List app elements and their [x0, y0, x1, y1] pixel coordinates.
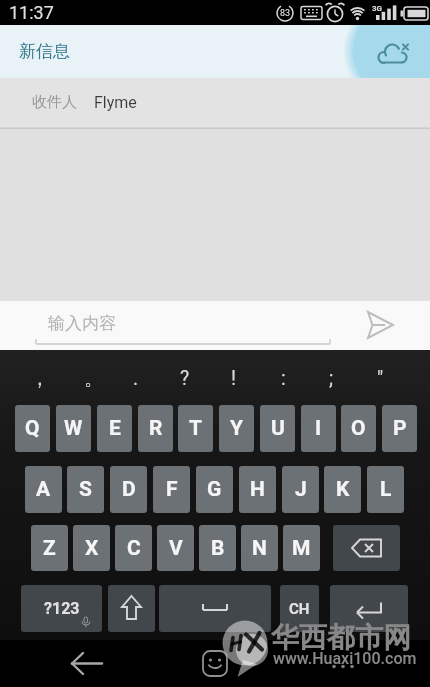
staticText: B [211, 536, 225, 561]
staticText: ? [180, 367, 190, 390]
button[interactable]: ! [212, 362, 256, 394]
staticText: ， [30, 366, 50, 391]
button[interactable]: R [138, 405, 173, 452]
button[interactable]: ? [163, 362, 207, 394]
staticText: X [85, 536, 99, 561]
button[interactable]: . [114, 362, 158, 394]
staticText: G [207, 477, 222, 502]
button[interactable]: I [301, 405, 336, 452]
button[interactable]: CH [280, 585, 319, 632]
button[interactable] [199, 648, 231, 680]
button[interactable]: 收件人 [0, 78, 430, 129]
button[interactable]: G [196, 466, 233, 513]
button[interactable]: H [239, 466, 276, 513]
button[interactable]: B [199, 525, 236, 571]
staticText: 3G [372, 4, 383, 13]
button[interactable] [360, 25, 430, 78]
staticText: K [336, 477, 350, 502]
button[interactable]: Z [31, 525, 68, 571]
staticText: L [380, 477, 392, 502]
staticText: . [133, 367, 139, 390]
button[interactable]: D [110, 466, 147, 513]
button[interactable]: ?123 [21, 585, 102, 632]
staticText: H [250, 477, 265, 502]
button[interactable]: P [382, 405, 417, 452]
button[interactable]: F [153, 466, 190, 513]
button[interactable]: ; [309, 362, 353, 394]
staticText: 输入内容 [48, 313, 116, 334]
button[interactable]: S [67, 466, 104, 513]
button[interactable] [159, 585, 271, 632]
staticText: P [393, 416, 407, 441]
staticText: Y [230, 416, 243, 441]
button[interactable]: U [260, 405, 295, 452]
button[interactable]: O [341, 405, 376, 452]
staticText: Z [43, 536, 56, 561]
staticText: E [109, 416, 121, 441]
button[interactable]: K [324, 466, 361, 513]
button[interactable]: L [367, 466, 404, 513]
staticText: Flyme [94, 93, 137, 112]
staticText: T [189, 416, 202, 441]
staticText: ! [231, 367, 237, 390]
button[interactable]: E [97, 405, 132, 452]
staticText: M [292, 536, 311, 561]
button[interactable]: X [73, 525, 110, 571]
staticText: ?123 [44, 599, 80, 618]
button[interactable]: : [261, 362, 305, 394]
button[interactable]: 。 [72, 362, 116, 394]
staticText: 华西都市网 [271, 620, 411, 652]
button[interactable]: J [282, 466, 319, 513]
staticText: S [79, 477, 92, 502]
button[interactable]: C [115, 525, 152, 571]
staticText: 新信息 [19, 41, 70, 62]
staticText: C [127, 536, 141, 561]
button[interactable]: W [56, 405, 91, 452]
button[interactable]: Q [15, 405, 50, 452]
staticText: 83 [280, 8, 291, 19]
staticText: ; [329, 367, 334, 390]
button[interactable]: M [283, 525, 320, 571]
button[interactable] [108, 585, 155, 632]
button[interactable]: N [241, 525, 278, 571]
staticText: " [377, 367, 384, 390]
button[interactable] [333, 525, 400, 571]
button[interactable] [62, 640, 110, 687]
staticText: www.Huaxi100.com [273, 649, 417, 666]
button[interactable] [330, 585, 408, 632]
staticText: CH [289, 600, 310, 618]
staticText: U [271, 416, 285, 441]
button[interactable]: " [358, 362, 402, 394]
staticText: V [169, 536, 183, 561]
staticText: Q [25, 416, 40, 441]
button[interactable] [355, 301, 410, 350]
staticText: I [315, 416, 322, 441]
staticText: : [281, 367, 286, 390]
staticText: D [122, 477, 136, 502]
staticText: J [295, 477, 307, 502]
staticText: A [36, 477, 51, 502]
button[interactable]: A [25, 466, 62, 513]
staticText: 11:37 [9, 2, 54, 23]
staticText: R [149, 416, 163, 441]
staticText: O [351, 416, 366, 441]
button[interactable]: 输入内容 [0, 301, 430, 350]
staticText: F [166, 477, 178, 502]
staticText: N [252, 536, 267, 561]
staticText: W [64, 416, 83, 441]
button[interactable]: Y [219, 405, 254, 452]
staticText: 。 [84, 366, 104, 391]
button[interactable]: V [157, 525, 194, 571]
button[interactable]: T [178, 405, 213, 452]
staticText: 收件人 [32, 93, 77, 112]
button[interactable]: ， [18, 362, 62, 394]
